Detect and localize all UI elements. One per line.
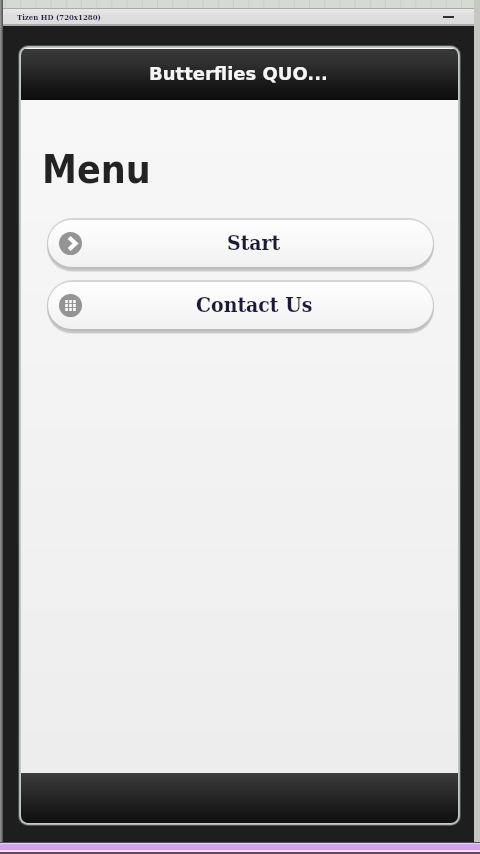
- staticText: Contact Us: [196, 292, 313, 317]
- staticText: Tizen HD (720x1280): [17, 13, 101, 21]
- button[interactable]: Contact Us: [48, 282, 433, 329]
- other: Contact Us: [59, 294, 82, 317]
- staticText: Menu: [42, 147, 151, 192]
- other: Start: [59, 232, 82, 255]
- button[interactable]: Start: [48, 220, 433, 267]
- button[interactable]: Butterflies QUO...: [21, 49, 458, 100]
- staticText: Butterflies QUO...: [149, 63, 328, 84]
- staticText: Start: [227, 230, 281, 255]
